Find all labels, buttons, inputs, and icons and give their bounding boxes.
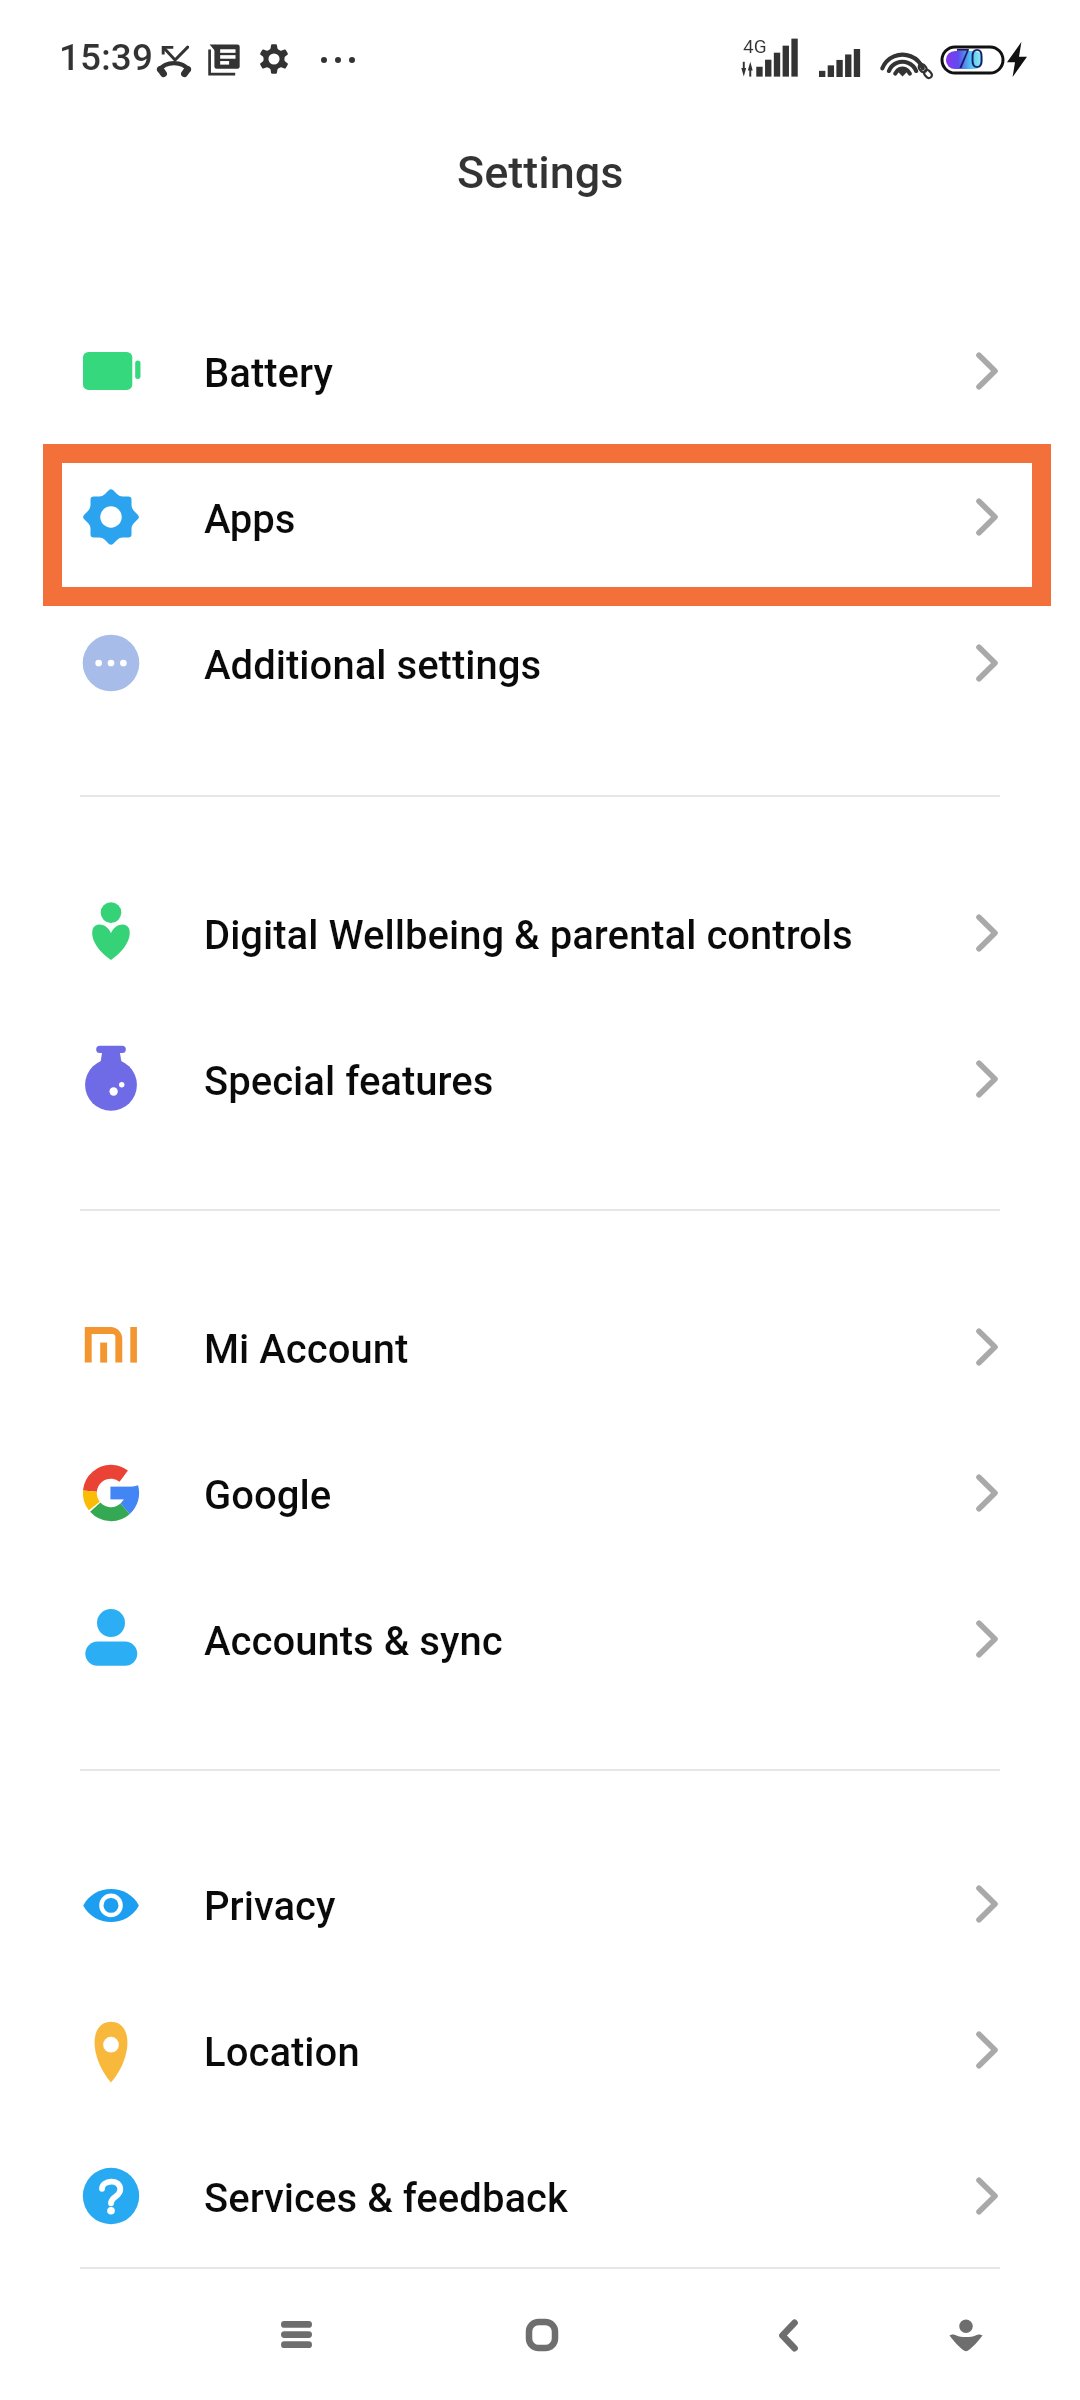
button[interactable]: Google: [0, 1420, 1080, 1566]
button[interactable]: Accounts & sync: [0, 1566, 1080, 1712]
button[interactable]: Services & feedback: [0, 2123, 1080, 2269]
staticText: Settings: [457, 146, 624, 199]
staticText: 15:39: [59, 36, 153, 79]
staticText: Google: [204, 1472, 332, 1519]
button[interactable]: Special features: [0, 1006, 1080, 1152]
staticText: Location: [204, 2029, 360, 2076]
staticText: Apps: [204, 496, 296, 543]
button[interactable]: Home: [492, 2285, 592, 2385]
staticText: Digital Wellbeing & parental controls: [204, 912, 853, 959]
button[interactable]: Location: [0, 1977, 1080, 2123]
staticText: Special features: [204, 1058, 494, 1105]
button[interactable]: Battery: [0, 298, 1080, 444]
button[interactable]: Mi Account: [0, 1274, 1080, 1420]
button[interactable]: Digital Wellbeing & parental controls: [0, 860, 1080, 1006]
staticText: Additional settings: [204, 642, 542, 689]
staticText: Battery: [204, 350, 333, 397]
staticText: Services & feedback: [204, 2175, 568, 2222]
staticText: Accounts & sync: [204, 1618, 503, 1665]
button[interactable]: Privacy: [0, 1831, 1080, 1977]
staticText: Mi Account: [204, 1326, 409, 1373]
staticText: 4G: [743, 35, 767, 57]
button[interactable]: Additional settings: [0, 590, 1080, 736]
staticText: 70: [956, 45, 985, 74]
button[interactable]: Back: [738, 2285, 838, 2385]
button[interactable]: Recents: [246, 2284, 346, 2384]
staticText: Privacy: [204, 1883, 336, 1930]
button[interactable]: Apps: [0, 444, 1080, 590]
button[interactable]: Download: [916, 2285, 1016, 2385]
